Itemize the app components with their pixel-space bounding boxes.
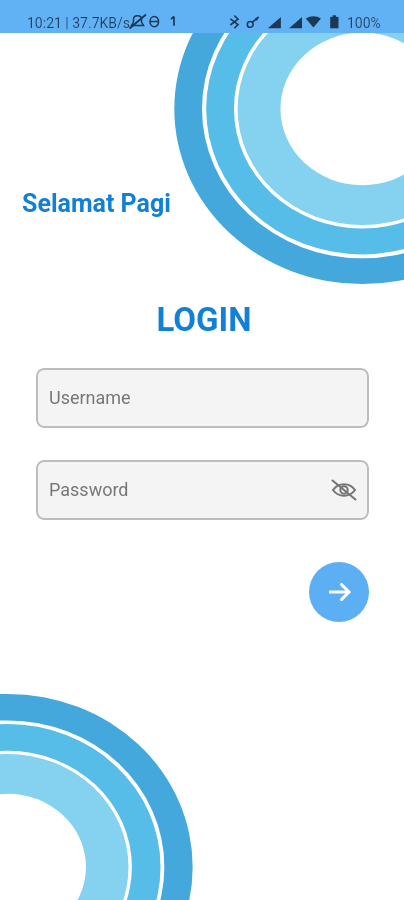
button[interactable]: Toggle password visibility [332,478,356,502]
staticText: Selamat Pagi [22,189,171,218]
button[interactable]: Login [309,562,369,622]
staticText: 10:21 | 37.7KB/s [27,15,131,31]
staticText: Password [49,479,129,500]
button[interactable]: Password [36,460,369,520]
staticText: 100% [347,15,381,31]
button[interactable]: Username [36,368,369,428]
staticText: LOGIN [2,300,404,339]
staticText: Username [49,387,131,408]
